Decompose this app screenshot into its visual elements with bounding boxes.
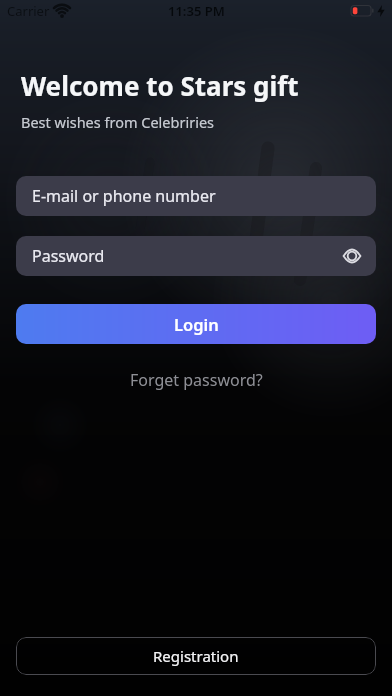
button[interactable]: Login bbox=[16, 304, 376, 344]
staticText: Login bbox=[174, 313, 219, 335]
button[interactable]: Registration bbox=[16, 637, 376, 675]
button[interactable]: Password bbox=[16, 236, 376, 276]
staticText: 11:35 PM bbox=[168, 2, 225, 20]
staticText: E-mail or phone number bbox=[32, 185, 216, 207]
button[interactable]: E-mail or phone number bbox=[16, 176, 376, 216]
button[interactable]: Forget password? bbox=[130, 369, 263, 391]
staticText: Password bbox=[32, 245, 105, 267]
staticText: Welcome to Stars gift bbox=[21, 68, 299, 103]
staticText: Registration bbox=[153, 646, 239, 666]
staticText: Carrier bbox=[7, 2, 50, 20]
staticText: Best wishes from Celebriries bbox=[21, 112, 215, 132]
